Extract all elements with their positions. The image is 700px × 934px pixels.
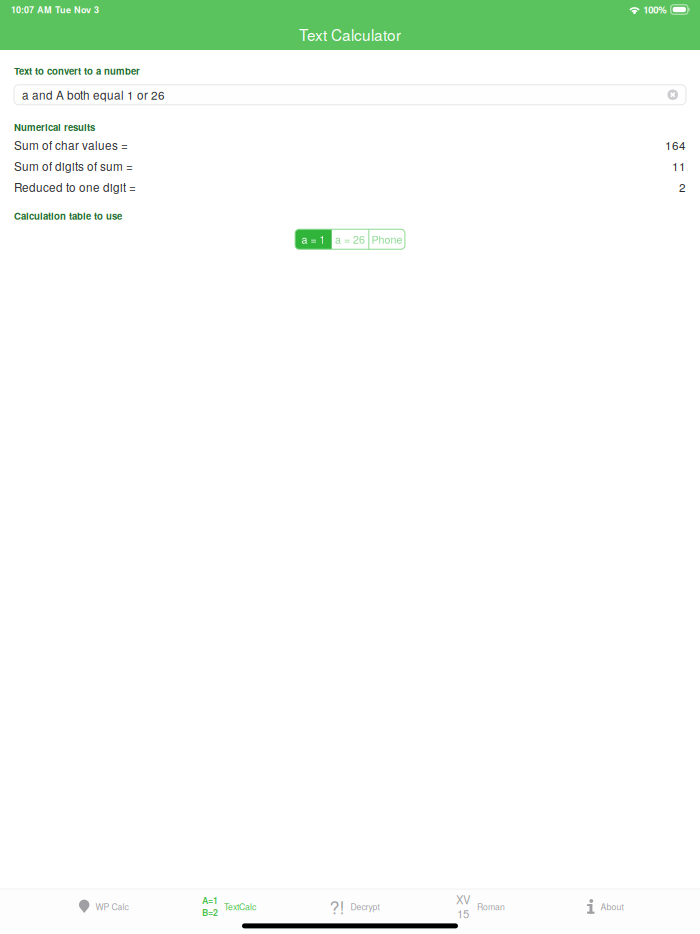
button[interactable]: a = 1: [295, 229, 332, 249]
staticText: Roman: [477, 900, 505, 913]
staticText: 10:07 AM: [11, 3, 52, 16]
staticText: XV: [456, 891, 470, 907]
staticText: Sum of digits of sum =: [14, 158, 133, 174]
staticText: a = 26: [335, 232, 365, 247]
button[interactable]: a = 26: [332, 229, 368, 249]
staticText: 164: [665, 137, 686, 153]
staticText: Text to convert to a number: [14, 64, 140, 78]
button[interactable]: XV: [417, 889, 543, 923]
staticText: 100%: [643, 3, 667, 16]
staticText: 2: [679, 179, 686, 195]
button[interactable]: About: [543, 889, 668, 923]
staticText: Phone: [372, 232, 403, 247]
button[interactable]: Clear text: [667, 89, 678, 100]
staticText: Sum of char values =: [14, 137, 128, 153]
staticText: 11: [672, 158, 686, 174]
button[interactable]: Phone: [369, 229, 405, 249]
button[interactable]: ?!: [292, 889, 417, 923]
staticText: Calculation table to use: [14, 209, 122, 223]
staticText: Decrypt: [350, 900, 379, 913]
button[interactable]: WP Calc: [41, 889, 166, 923]
staticText: 15: [457, 905, 469, 921]
staticText: Numerical results: [14, 120, 95, 134]
staticText: Reduced to one digit =: [14, 179, 136, 195]
staticText: Text Calculator: [299, 23, 401, 45]
staticText: a = 1: [301, 232, 325, 247]
staticText: A=1: [202, 894, 218, 907]
button[interactable]: A=1: [166, 889, 292, 923]
staticText: TextCalc: [224, 900, 256, 913]
staticText: Tue Nov 3: [55, 3, 99, 16]
staticText: B=2: [202, 906, 218, 919]
staticText: ?!: [329, 893, 344, 919]
staticText: a and A both equal 1 or 26: [22, 86, 165, 103]
staticText: WP Calc: [95, 900, 128, 913]
staticText: About: [600, 900, 623, 913]
